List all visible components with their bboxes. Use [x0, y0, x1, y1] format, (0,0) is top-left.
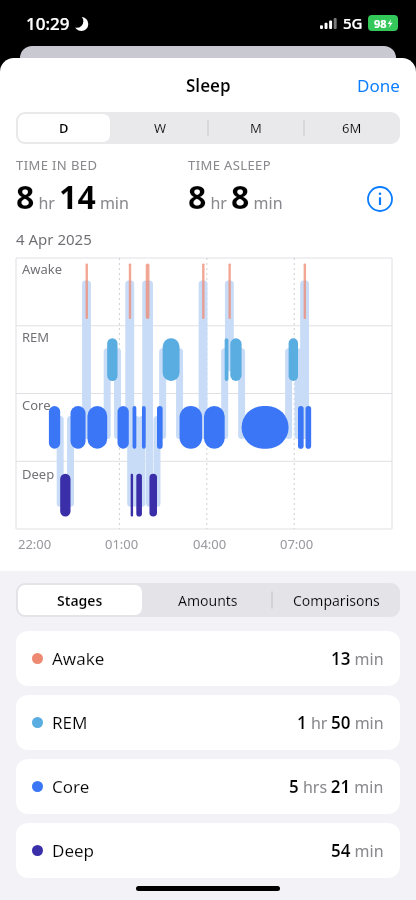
staticText: 5 hrs 21 min — [289, 775, 384, 798]
staticText: Comparisons — [293, 591, 380, 610]
staticText: 8 hr 14 min — [16, 175, 134, 219]
staticText: 8 hr 8 min — [188, 175, 287, 219]
staticText: Amounts — [178, 591, 238, 610]
button[interactable]: Stages — [18, 585, 142, 615]
staticText: Stages — [57, 591, 103, 610]
staticText: Awake — [22, 260, 63, 278]
staticText: TIME ASLEEP — [188, 156, 272, 174]
staticText: 98 — [374, 16, 387, 31]
staticText: 1 hr 50 min — [297, 711, 384, 734]
button[interactable]: Deep — [16, 823, 400, 878]
button[interactable]: Core — [16, 759, 400, 814]
staticText: Deep — [52, 839, 95, 862]
staticText: Awake — [52, 647, 105, 670]
staticText: Core — [52, 775, 90, 798]
staticText: 5G — [343, 13, 363, 33]
button[interactable]: Comparisons — [274, 585, 398, 615]
button[interactable]: W — [114, 114, 206, 142]
staticText: D — [59, 119, 69, 137]
button[interactable]: D — [18, 114, 110, 142]
staticText: W — [154, 119, 167, 137]
staticText: Deep — [22, 465, 55, 483]
button[interactable]: REM — [16, 695, 400, 750]
button[interactable]: Amounts — [146, 585, 270, 615]
staticText: REM — [52, 711, 88, 734]
staticText: 22:00 — [18, 535, 52, 553]
staticText: 10:29 — [26, 12, 70, 35]
staticText: Done — [357, 74, 400, 97]
staticText: Core — [22, 396, 51, 414]
staticText: 01:00 — [105, 535, 139, 553]
button[interactable]: M — [210, 114, 302, 142]
staticText: M — [250, 119, 262, 137]
staticText: 4 Apr 2025 — [16, 229, 92, 249]
staticText: 6M — [342, 119, 362, 137]
button[interactable]: Information — [360, 179, 400, 219]
staticText: REM — [22, 328, 50, 346]
staticText: Sleep — [186, 74, 231, 97]
staticText: 07:00 — [280, 535, 314, 553]
button[interactable]: Awake — [16, 631, 400, 686]
button[interactable]: 6M — [306, 114, 398, 142]
staticText: TIME IN BED — [16, 156, 98, 174]
staticText: 54 min — [331, 839, 384, 862]
staticText: 13 min — [331, 647, 384, 670]
button[interactable]: Done — [341, 66, 416, 105]
staticText: 04:00 — [193, 535, 227, 553]
